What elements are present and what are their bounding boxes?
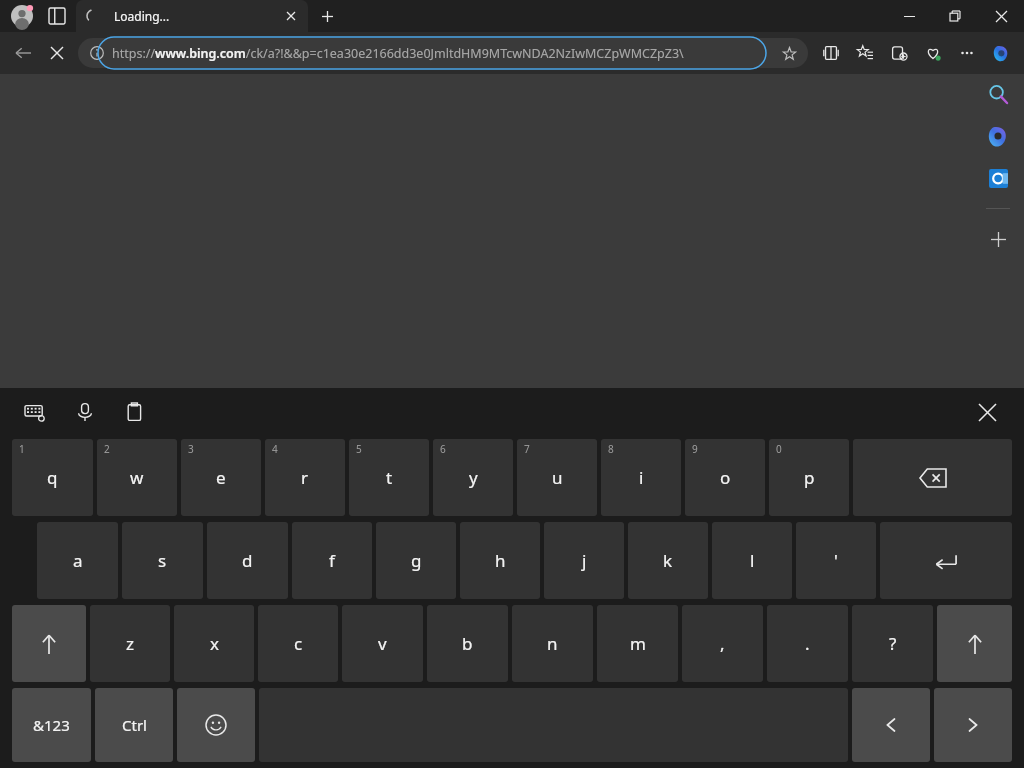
button[interactable]: Profile <box>8 2 36 30</box>
staticText: d <box>242 549 253 572</box>
staticText: f <box>329 549 335 572</box>
button[interactable]: l <box>712 522 792 599</box>
button[interactable]: d <box>207 522 288 599</box>
button[interactable]: b <box>427 605 508 682</box>
button[interactable]: s <box>122 522 203 599</box>
button[interactable]: Copilot <box>984 36 1018 70</box>
button[interactable]: 0 <box>769 439 849 516</box>
staticText: 6 <box>440 442 446 456</box>
button[interactable]: . <box>767 605 848 682</box>
button[interactable]: Loading... <box>76 0 308 32</box>
staticText: https://www.bing.com/ck/a?!&&p=c1ea30e21… <box>112 45 776 62</box>
button[interactable]: a <box>37 522 118 599</box>
button[interactable]: j <box>544 522 624 599</box>
button[interactable]: 8 <box>601 439 681 516</box>
button[interactable]: Collections <box>882 36 916 70</box>
staticText: a <box>73 549 83 572</box>
button[interactable]: 3 <box>181 439 261 516</box>
button[interactable]: k <box>628 522 708 599</box>
staticText: 1 <box>19 442 25 456</box>
button[interactable]: Close keyboard <box>964 389 1010 435</box>
button[interactable]: Favorites <box>848 36 882 70</box>
button[interactable]: Search <box>978 74 1018 114</box>
button[interactable]: z <box>90 605 170 682</box>
staticText: c <box>294 632 303 655</box>
staticText: j <box>582 549 587 572</box>
button[interactable]: Keyboard settings <box>14 391 56 433</box>
button[interactable]: Emoji <box>177 688 255 762</box>
button[interactable]: Enter <box>880 522 1012 599</box>
button[interactable]: Left arrow <box>852 688 930 762</box>
staticText: g <box>411 549 422 572</box>
staticText: 5 <box>356 442 362 456</box>
staticText: y <box>469 466 478 489</box>
button[interactable]: Minimize <box>886 0 932 32</box>
staticText: h <box>495 549 506 572</box>
button[interactable]: Shift <box>12 605 86 682</box>
button[interactable]: New tab <box>314 3 340 29</box>
button[interactable]: Backspace <box>853 439 1012 516</box>
button[interactable]: 6 <box>433 439 513 516</box>
staticText: m <box>630 632 646 655</box>
staticText: 2 <box>104 442 110 456</box>
staticText: 8 <box>608 442 614 456</box>
button[interactable]: f <box>292 522 372 599</box>
button[interactable]: Tab actions <box>42 1 72 31</box>
staticText: o <box>720 466 731 489</box>
button[interactable]: Settings and more <box>950 36 984 70</box>
button[interactable]: Ctrl <box>95 688 173 762</box>
button[interactable]: h <box>460 522 540 599</box>
staticText: i <box>639 466 644 489</box>
button[interactable]: Split screen <box>814 36 848 70</box>
button[interactable]: Outlook <box>978 158 1018 198</box>
staticText: q <box>47 466 58 489</box>
button[interactable]: ' <box>796 522 876 599</box>
staticText: Loading... <box>114 8 280 24</box>
button[interactable]: v <box>342 605 423 682</box>
button[interactable]: Voice typing <box>64 391 106 433</box>
button[interactable]: n <box>512 605 593 682</box>
button[interactable]: c <box>258 605 338 682</box>
staticText: w <box>130 466 144 489</box>
staticText: b <box>462 632 473 655</box>
button[interactable]: Shift <box>937 605 1012 682</box>
button[interactable]: Maximize <box>932 0 978 32</box>
button[interactable]: Browser essentials <box>916 36 950 70</box>
button[interactable]: Clipboard <box>114 391 156 433</box>
staticText: k <box>663 549 673 572</box>
staticText: , <box>720 632 725 655</box>
button[interactable]: , <box>682 605 763 682</box>
button[interactable]: Copilot <box>978 116 1018 156</box>
staticText: e <box>216 466 226 489</box>
button[interactable]: Add to favorites <box>776 40 802 66</box>
staticText: &123 <box>33 715 70 735</box>
button[interactable]: ? <box>852 605 933 682</box>
staticText: Ctrl <box>122 715 147 735</box>
button[interactable]: x <box>174 605 254 682</box>
button[interactable]: 2 <box>97 439 177 516</box>
button[interactable]: &123 <box>12 688 91 762</box>
button[interactable]: https://www.bing.com/ck/a?!&&p=c1ea30e21… <box>78 38 808 68</box>
button[interactable]: 1 <box>12 439 93 516</box>
staticText: 4 <box>272 442 278 456</box>
staticText: p <box>804 466 815 489</box>
button[interactable]: Right arrow <box>934 688 1012 762</box>
button[interactable]: m <box>597 605 678 682</box>
staticText: 3 <box>188 442 194 456</box>
button[interactable]: Stop loading <box>40 36 74 70</box>
button[interactable]: 9 <box>685 439 765 516</box>
button[interactable]: Close <box>978 0 1024 32</box>
staticText: 0 <box>776 442 782 456</box>
button[interactable]: 7 <box>517 439 597 516</box>
staticText: 7 <box>524 442 530 456</box>
button[interactable]: 4 <box>265 439 345 516</box>
staticText: l <box>750 549 755 572</box>
button[interactable]: g <box>376 522 456 599</box>
staticText: v <box>378 632 387 655</box>
button[interactable]: Close tab <box>280 5 302 27</box>
staticText: n <box>547 632 558 655</box>
button[interactable]: Customize sidebar <box>978 219 1018 259</box>
button[interactable]: 5 <box>349 439 429 516</box>
button[interactable]: Back <box>6 36 40 70</box>
